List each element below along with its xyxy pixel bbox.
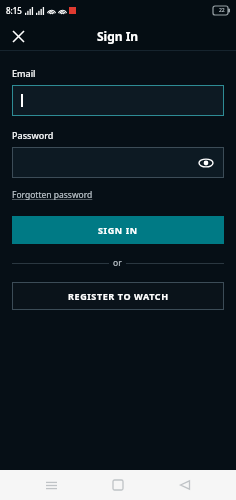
button[interactable]: Home [102, 470, 134, 500]
staticText: 22 [219, 7, 225, 14]
staticText: Email [12, 67, 36, 79]
button[interactable]: Show password [12, 147, 224, 178]
staticText: Sign In [97, 28, 139, 44]
button[interactable]: Show password [196, 153, 216, 173]
staticText: REGISTER TO WATCH [68, 290, 169, 302]
staticText: Forgotten password [12, 189, 93, 201]
staticText: or [113, 257, 122, 269]
staticText: Password [12, 129, 54, 141]
button[interactable]: REGISTER TO WATCH [12, 282, 224, 310]
staticText: SIGN IN [98, 224, 138, 236]
button[interactable]: Recent apps [35, 470, 67, 500]
button[interactable]: Close [6, 24, 30, 48]
staticText: 8:15 [6, 5, 22, 16]
button[interactable] [12, 85, 224, 116]
button[interactable]: SIGN IN [12, 216, 224, 244]
button[interactable]: Back [169, 470, 201, 500]
button[interactable]: Forgotten password [12, 188, 93, 202]
